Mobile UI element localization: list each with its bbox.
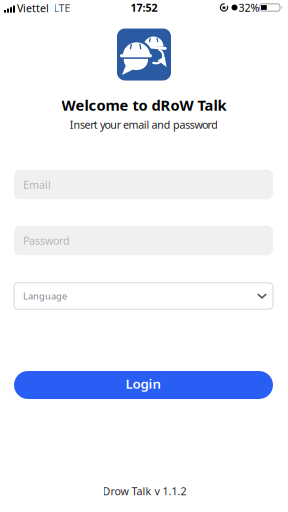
staticText: Password — [23, 233, 70, 248]
button[interactable]: Password — [14, 226, 273, 255]
staticText: Language — [23, 290, 67, 302]
staticText: Email — [23, 177, 51, 192]
button[interactable]: Login — [14, 371, 273, 399]
button[interactable]: Language — [14, 283, 273, 309]
staticText: 17:52 — [130, 0, 157, 15]
staticText: LTE — [53, 1, 70, 15]
staticText: Login — [125, 375, 161, 392]
staticText: Insert your email and password — [70, 117, 218, 132]
staticText: Drow Talk v 1.1.2 — [102, 484, 186, 498]
button[interactable]: Email — [14, 170, 273, 199]
staticText: 32% — [238, 0, 259, 15]
staticText: Viettel — [17, 1, 49, 15]
staticText: Welcome to dRoW Talk — [61, 95, 226, 115]
